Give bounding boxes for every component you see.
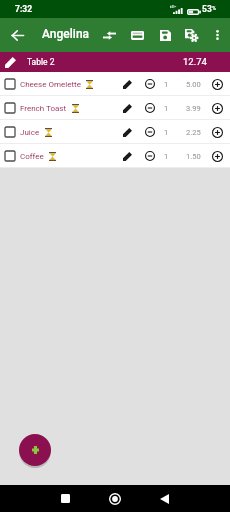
staticText: Table 2 — [27, 57, 55, 67]
staticText: French Toast — [20, 104, 67, 113]
button[interactable]: Increase quantity — [212, 144, 223, 168]
button[interactable]: Select item — [5, 103, 15, 113]
button[interactable]: Edit — [121, 72, 133, 96]
button[interactable]: Save — [153, 23, 177, 47]
staticText: 7:32 — [15, 4, 33, 14]
button[interactable]: Back — [150, 485, 178, 512]
staticText: Coffee — [20, 152, 44, 161]
staticText: 1 — [164, 104, 169, 113]
staticText: 1 — [164, 128, 169, 137]
staticText: 12.74 — [183, 56, 207, 67]
button[interactable]: Recents — [51, 485, 79, 512]
button[interactable]: Table 2 — [0, 52, 230, 72]
staticText: % — [212, 5, 217, 11]
button[interactable]: Transfer — [97, 23, 121, 47]
button[interactable]: Add item — [19, 434, 51, 466]
button[interactable]: Select item — [5, 127, 15, 137]
button[interactable]: Select item — [0, 96, 230, 120]
staticText: 1 — [164, 152, 169, 161]
button[interactable]: Select item — [5, 151, 15, 161]
button[interactable]: Home — [101, 485, 129, 512]
staticText: Angelina — [42, 27, 90, 41]
staticText: 1 — [164, 80, 169, 89]
button[interactable]: Select item — [0, 120, 230, 144]
staticText: 2.25 — [186, 128, 201, 137]
button[interactable]: Pay — [125, 23, 149, 47]
button[interactable]: Edit — [121, 96, 133, 120]
staticText: Juice — [20, 128, 40, 137]
button[interactable]: Increase quantity — [212, 96, 223, 120]
button[interactable]: Decrease quantity — [144, 144, 155, 168]
button[interactable]: Select item — [0, 144, 230, 168]
staticText: 1.50 — [186, 152, 201, 161]
button[interactable]: Select item — [0, 72, 230, 96]
button[interactable]: Edit — [121, 144, 133, 168]
button[interactable]: Increase quantity — [212, 120, 223, 144]
button[interactable]: Decrease quantity — [144, 120, 155, 144]
button[interactable]: Edit — [121, 120, 133, 144]
button[interactable]: Decrease quantity — [144, 72, 155, 96]
button[interactable]: Back — [5, 23, 29, 47]
button[interactable]: Select item — [5, 79, 15, 89]
staticText: 5.00 — [186, 80, 201, 89]
button[interactable]: Increase quantity — [212, 72, 223, 96]
staticText: Cheese Omelette — [20, 80, 81, 89]
button[interactable]: Save as — [179, 23, 203, 47]
staticText: 53 — [202, 4, 212, 14]
button[interactable]: Decrease quantity — [144, 96, 155, 120]
staticText: 3.99 — [186, 104, 201, 113]
button[interactable]: More options — [205, 23, 229, 47]
